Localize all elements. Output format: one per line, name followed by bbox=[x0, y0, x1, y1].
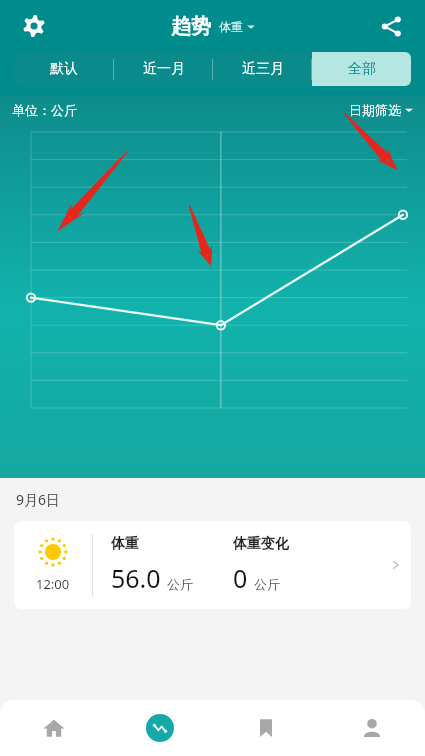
staticText: 56.0 bbox=[111, 561, 161, 595]
staticText: 公斤 bbox=[254, 576, 280, 592]
staticText: 近三月 bbox=[242, 60, 284, 78]
button[interactable]: Trends bbox=[107, 700, 213, 756]
button[interactable]: Home bbox=[0, 700, 107, 756]
staticText: 体重 bbox=[219, 19, 243, 34]
button[interactable]: Bookmarks bbox=[213, 700, 319, 756]
staticText: 默认 bbox=[50, 60, 78, 78]
button[interactable]: 近三月 bbox=[213, 52, 312, 86]
staticText: 体重变化 bbox=[233, 535, 289, 553]
button[interactable]: 趋势 bbox=[171, 14, 255, 39]
button[interactable]: 全部 bbox=[312, 52, 411, 86]
staticText: 趋势 bbox=[171, 14, 211, 39]
staticText: 12:00 bbox=[36, 575, 70, 593]
staticText: 公斤 bbox=[167, 576, 193, 592]
staticText: 9月6日 bbox=[16, 490, 61, 509]
button[interactable]: Settings bbox=[14, 6, 54, 46]
button[interactable]: Share bbox=[371, 6, 411, 46]
staticText: 日期筛选 bbox=[349, 102, 401, 118]
staticText: 单位：公斤 bbox=[12, 102, 77, 118]
staticText: 近一月 bbox=[143, 60, 185, 78]
button[interactable]: 日期筛选 bbox=[349, 102, 413, 118]
staticText: 体重 bbox=[111, 535, 139, 553]
button[interactable]: Profile bbox=[319, 700, 425, 756]
staticText: 全部 bbox=[348, 60, 376, 78]
staticText: 0 bbox=[233, 561, 248, 595]
button[interactable]: 默认 bbox=[14, 52, 114, 86]
button[interactable]: 近一月 bbox=[114, 52, 213, 86]
button[interactable]: 12:00 bbox=[14, 521, 411, 609]
